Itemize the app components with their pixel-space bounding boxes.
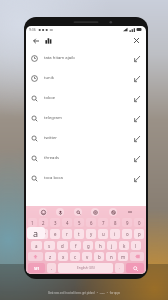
button[interactable]: f [70, 241, 81, 250]
button[interactable]: Backspace [130, 252, 144, 261]
button[interactable]: toca boca [26, 168, 146, 188]
button[interactable]: g [83, 241, 93, 250]
staticText: j [111, 243, 113, 249]
button[interactable]: n [106, 252, 116, 261]
button[interactable]: v [82, 252, 92, 261]
staticText: c [74, 254, 77, 260]
button[interactable]: Insert toca boca [132, 174, 141, 183]
button[interactable]: Keyboard tool 2 [56, 208, 64, 216]
staticText: z [49, 254, 52, 260]
button[interactable]: w [39, 229, 48, 239]
button[interactable]: tokoe [26, 88, 146, 108]
button[interactable]: 0 [134, 218, 144, 227]
button[interactable]: Expand toolbar [126, 208, 133, 216]
staticText: y [90, 231, 93, 237]
button[interactable]: threads [26, 148, 146, 168]
button[interactable]: Shift [28, 252, 43, 261]
staticText: 6 [90, 220, 93, 226]
button[interactable]: telegram [26, 108, 146, 128]
staticText: tunik [44, 75, 55, 81]
button[interactable]: Keyboard tool 5 [109, 208, 117, 216]
button[interactable]: Insert tokoe [132, 94, 141, 103]
button[interactable]: s [44, 241, 55, 250]
button[interactable]: y [86, 229, 96, 239]
button[interactable]: a [31, 241, 42, 250]
button[interactable]: 3 [50, 218, 60, 227]
staticText: f [75, 243, 77, 249]
staticText: o [126, 231, 129, 237]
button[interactable]: Insert telegram [132, 114, 141, 123]
staticText: Best new and trusted items get picked • … [48, 291, 120, 295]
button[interactable]: d [57, 241, 68, 250]
staticText: 2 [42, 220, 45, 226]
button[interactable]: q [28, 229, 37, 239]
button[interactable]: t [74, 229, 84, 239]
button[interactable]: 5 [74, 218, 84, 227]
staticText: t [78, 231, 80, 237]
button[interactable]: 8 [110, 218, 120, 227]
button[interactable]: e [50, 229, 60, 239]
staticText: u [102, 231, 105, 237]
button[interactable]: 7 [98, 218, 108, 227]
staticText: tata hitam ajaib [44, 55, 75, 61]
button[interactable]: , [47, 263, 56, 273]
button[interactable]: 2 [39, 218, 48, 227]
staticText: m [121, 254, 126, 260]
button[interactable]: u [98, 229, 108, 239]
staticText: 5 [78, 220, 81, 226]
staticText: , [51, 265, 53, 271]
staticText: a [35, 243, 38, 249]
staticText: telegram [44, 115, 62, 121]
button[interactable]: b [94, 252, 104, 261]
staticText: English (US) [77, 266, 95, 270]
staticText: 4 [66, 220, 69, 226]
button[interactable]: l [131, 241, 141, 250]
staticText: !#1 [34, 266, 40, 271]
button[interactable]: x [58, 252, 68, 261]
staticText: threads [44, 155, 60, 161]
button[interactable]: twitter [26, 128, 146, 148]
button[interactable]: Clear search [131, 35, 142, 46]
button[interactable]: Keyboard tool 4 [91, 208, 99, 216]
staticText: toca boca [44, 175, 63, 181]
button[interactable]: 6 [86, 218, 96, 227]
button[interactable]: Keyboard tool 3 [74, 208, 82, 216]
button[interactable]: tata hitam ajaib [26, 48, 146, 68]
button[interactable]: Keyboard tool 1 [39, 208, 47, 216]
staticText: b [98, 254, 101, 260]
staticText: 3 [54, 220, 57, 226]
button[interactable]: tunik [26, 68, 146, 88]
staticText: r [66, 231, 68, 237]
button[interactable]: Insert threads [132, 154, 141, 163]
staticText: v [86, 254, 89, 260]
button[interactable]: i [110, 229, 120, 239]
staticText: 1 [31, 220, 34, 226]
button[interactable]: . [115, 263, 124, 273]
button[interactable]: !#1 [28, 263, 45, 273]
staticText: e [54, 231, 57, 237]
button[interactable]: Insert tunik [132, 74, 141, 83]
button[interactable]: English (US) [58, 263, 113, 273]
button[interactable]: Insert tata hitam ajaib [132, 54, 141, 63]
button[interactable]: z [45, 252, 56, 261]
button[interactable]: Insert twitter [132, 134, 141, 143]
button[interactable]: p [134, 229, 144, 239]
button[interactable]: j [107, 241, 117, 250]
button[interactable]: 9 [122, 218, 132, 227]
button[interactable]: 4 [62, 218, 72, 227]
staticText: 9 [126, 220, 129, 226]
staticText: p [138, 231, 141, 237]
button[interactable]: r [62, 229, 72, 239]
button[interactable]: o [122, 229, 132, 239]
button[interactable]: Back [30, 35, 41, 46]
button[interactable]: m [118, 252, 128, 261]
button[interactable]: c [70, 252, 80, 261]
button[interactable]: 1 [28, 218, 37, 227]
staticText: 9:36 [29, 27, 36, 32]
staticText: 0 [138, 220, 141, 226]
button[interactable]: h [95, 241, 105, 250]
button[interactable]: k [119, 241, 129, 250]
staticText: twitter [44, 135, 57, 141]
button[interactable]: Search [126, 263, 144, 273]
staticText: q [31, 231, 34, 237]
